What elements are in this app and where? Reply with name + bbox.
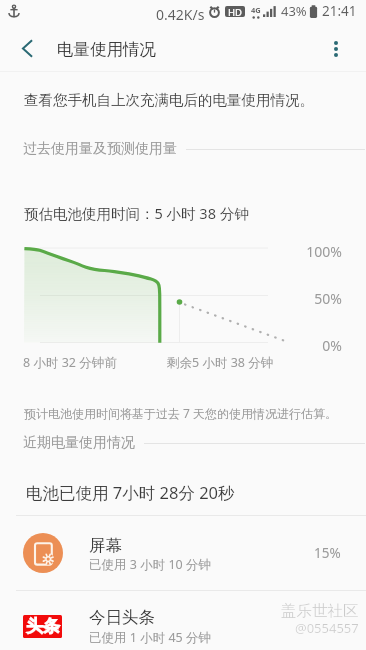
button[interactable]: 头条 — [0, 591, 366, 650]
staticText: 电量使用情况 — [57, 39, 156, 60]
staticText: 盖乐世社区 — [281, 601, 359, 621]
staticText: 50% — [314, 289, 342, 308]
staticText: 查看您手机自上次充满电后的电量使用情况。 — [24, 91, 314, 109]
staticText: 屏幕 — [89, 535, 122, 556]
staticText: @0554557 — [295, 619, 359, 637]
staticText: 100% — [306, 242, 342, 261]
staticText: 8 小时 32 分钟前 — [23, 354, 117, 371]
staticText: 15% — [314, 544, 341, 562]
staticText: 预估电池使用时间：5 小时 38 分钟 — [24, 203, 249, 223]
staticText: 43% — [281, 2, 307, 20]
staticText: 0.42K/s — [156, 5, 205, 24]
staticText: 头条 — [26, 616, 60, 637]
staticText: 0% — [322, 336, 342, 355]
staticText: HD — [228, 6, 243, 17]
staticText: 已使用 3 小时 10 分钟 — [89, 556, 211, 573]
staticText: 近期电量使用情况 — [23, 434, 135, 452]
staticText: 过去使用量及预测使用量 — [23, 140, 177, 158]
staticText: 21:41 — [322, 2, 357, 20]
staticText: 预计电池使用时间将基于过去 7 天您的使用情况进行估算。 — [24, 405, 338, 421]
button[interactable]: More options — [314, 27, 358, 71]
staticText: 今日头条 — [89, 607, 155, 628]
staticText: 已使用 1 小时 45 分钟 — [89, 629, 211, 646]
staticText: 剩余5 小时 38 分钟 — [167, 354, 274, 371]
staticText: 4G — [251, 5, 261, 15]
button[interactable]: 屏幕 — [0, 516, 366, 590]
button[interactable]: Back — [5, 26, 49, 70]
staticText: 电池已使用 7小时 28分 20秒 — [26, 481, 235, 504]
